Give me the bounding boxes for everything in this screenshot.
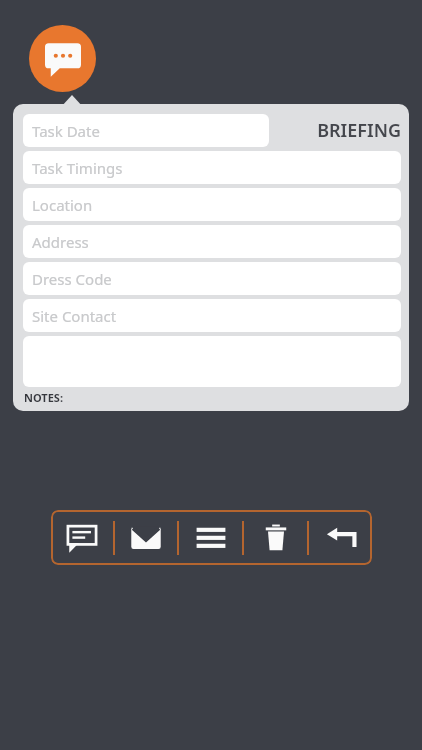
button[interactable]: Task Date — [23, 114, 269, 147]
button[interactable]: Site Contact — [23, 299, 401, 332]
button[interactable]: Address — [23, 225, 401, 258]
staticText: NOTES: — [24, 390, 63, 405]
staticText: BRIEFING — [317, 118, 401, 143]
button[interactable]: Back — [309, 510, 372, 565]
button[interactable]: Task Timings — [23, 151, 401, 184]
staticText: Site Contact — [32, 306, 117, 326]
staticText: Task Timings — [32, 158, 123, 178]
button[interactable]: Briefing chat — [29, 25, 96, 92]
button[interactable]: Delete — [244, 510, 307, 565]
staticText: Location — [32, 195, 93, 215]
button[interactable]: Location — [23, 188, 401, 221]
staticText: Address — [32, 232, 89, 252]
button[interactable]: Menu — [179, 510, 242, 565]
button[interactable]: Mail — [115, 510, 177, 565]
staticText: Task Date — [32, 121, 100, 141]
staticText: Dress Code — [32, 269, 112, 289]
button[interactable]: Messages — [51, 510, 113, 565]
button[interactable]: Dress Code — [23, 262, 401, 295]
